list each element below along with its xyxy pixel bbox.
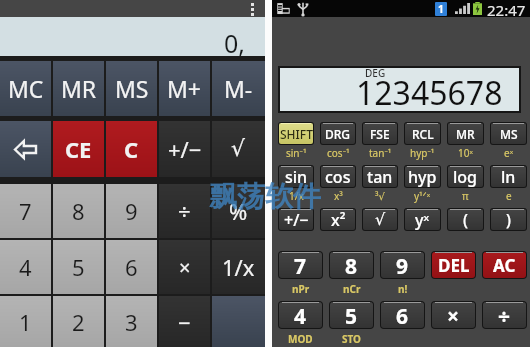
staticText: +/− bbox=[284, 209, 309, 230]
staticText: MC bbox=[8, 73, 44, 104]
button[interactable]: hyp bbox=[405, 166, 440, 187]
button[interactable]: MS bbox=[106, 61, 157, 116]
staticText: 7 bbox=[19, 196, 32, 226]
button[interactable]: 9 bbox=[106, 184, 157, 238]
staticText: √ bbox=[231, 136, 246, 162]
staticText: AC bbox=[493, 254, 516, 277]
button[interactable]: tan bbox=[363, 166, 397, 187]
button[interactable]: × bbox=[432, 302, 475, 328]
button[interactable]: 6 bbox=[381, 302, 424, 328]
staticText: 22:47 bbox=[487, 0, 526, 17]
button[interactable]: 8 bbox=[330, 252, 373, 278]
button[interactable]: 4 bbox=[279, 302, 322, 328]
staticText: CE bbox=[65, 134, 92, 164]
button[interactable]: +/− bbox=[279, 209, 313, 230]
button[interactable]: 7 bbox=[0, 184, 51, 238]
button[interactable]: ) bbox=[491, 209, 526, 230]
button[interactable]: 9 bbox=[381, 252, 424, 278]
staticText: 1 bbox=[438, 2, 444, 16]
button[interactable]: RCL bbox=[405, 123, 440, 144]
staticText: 8 bbox=[345, 252, 358, 278]
staticText: 9 bbox=[396, 252, 409, 278]
staticText: 飘荡软件 bbox=[209, 179, 321, 214]
staticText: log bbox=[453, 166, 478, 187]
staticText: RCL bbox=[412, 126, 434, 142]
button[interactable]: SHIFT bbox=[279, 123, 313, 144]
button[interactable]: 1 bbox=[0, 296, 51, 347]
staticText: 12345678 bbox=[356, 71, 503, 114]
button[interactable]: C bbox=[106, 121, 157, 177]
button[interactable]: √ bbox=[212, 121, 265, 177]
staticText: MS bbox=[115, 73, 149, 104]
button[interactable]: Backspace bbox=[0, 121, 51, 177]
button[interactable]: ÷ bbox=[159, 184, 210, 238]
staticText: 5 bbox=[345, 302, 358, 328]
staticText: 4 bbox=[294, 302, 307, 328]
button[interactable]: 1/x bbox=[212, 240, 265, 294]
button[interactable]: x² bbox=[321, 209, 355, 230]
staticText: STO bbox=[342, 332, 361, 346]
staticText: % bbox=[229, 196, 248, 226]
button[interactable]: AC bbox=[483, 252, 526, 278]
staticText: nPr bbox=[292, 282, 310, 296]
staticText: 1/x bbox=[222, 252, 255, 282]
button[interactable]: 5 bbox=[53, 240, 104, 294]
button[interactable]: 7 bbox=[279, 252, 322, 278]
staticText: nCr bbox=[343, 282, 361, 296]
staticText: − bbox=[178, 307, 191, 337]
button[interactable]: 8 bbox=[53, 184, 104, 238]
button[interactable]: √ bbox=[363, 209, 397, 230]
button[interactable]: ln bbox=[491, 166, 526, 187]
button[interactable]: 4 bbox=[0, 240, 51, 294]
staticText: 6 bbox=[125, 252, 138, 282]
button[interactable]: CE bbox=[53, 121, 104, 177]
staticText: ) bbox=[506, 209, 511, 230]
button[interactable]: M+ bbox=[159, 61, 210, 116]
button[interactable]: +/− bbox=[159, 121, 210, 177]
staticText: 10ˣ bbox=[458, 146, 473, 160]
button[interactable]: 6 bbox=[106, 240, 157, 294]
button[interactable]: sin bbox=[279, 166, 313, 187]
button[interactable]: log bbox=[448, 166, 483, 187]
staticText: hyp bbox=[408, 166, 437, 187]
button[interactable]: yˣ bbox=[405, 209, 440, 230]
staticText: hyp⁻¹ bbox=[410, 146, 435, 160]
staticText: yˣ bbox=[415, 209, 430, 230]
button[interactable]: 5 bbox=[330, 302, 373, 328]
staticText: +/− bbox=[168, 134, 202, 164]
staticText: π bbox=[462, 189, 469, 203]
button[interactable]: DEL bbox=[432, 252, 475, 278]
staticText: 1 bbox=[19, 307, 32, 337]
staticText: x³ bbox=[334, 189, 343, 203]
staticText: M- bbox=[224, 73, 253, 104]
staticText: ln bbox=[501, 166, 516, 187]
button[interactable]: FSE bbox=[363, 123, 397, 144]
staticText: FSE bbox=[370, 126, 390, 142]
button[interactable]: M- bbox=[212, 61, 265, 116]
staticText: 2 bbox=[72, 307, 85, 337]
button[interactable]: cos bbox=[321, 166, 355, 187]
button[interactable]: DRG bbox=[321, 123, 355, 144]
button[interactable]: ÷ bbox=[483, 302, 526, 328]
staticText: n! bbox=[398, 282, 408, 296]
button[interactable]: ( bbox=[448, 209, 483, 230]
button[interactable]: × bbox=[159, 240, 210, 294]
staticText: ÷ bbox=[178, 196, 191, 226]
staticText: x² bbox=[331, 209, 346, 230]
staticText: 6 bbox=[396, 302, 409, 328]
button[interactable]: MR bbox=[448, 123, 483, 144]
button[interactable]: − bbox=[159, 296, 210, 347]
staticText: 0, bbox=[224, 26, 246, 60]
staticText: C bbox=[124, 134, 139, 164]
staticText: 4 bbox=[19, 252, 32, 282]
button[interactable]: MS bbox=[491, 123, 526, 144]
staticText: tan⁻¹ bbox=[369, 146, 392, 160]
button[interactable]: MC bbox=[0, 61, 51, 116]
button[interactable]: MR bbox=[53, 61, 104, 116]
button[interactable]: 3 bbox=[106, 296, 157, 347]
button[interactable] bbox=[212, 296, 265, 347]
staticText: 1/x bbox=[289, 189, 304, 203]
button[interactable]: More options bbox=[244, 1, 260, 17]
button[interactable]: % bbox=[212, 184, 265, 238]
button[interactable]: 2 bbox=[53, 296, 104, 347]
